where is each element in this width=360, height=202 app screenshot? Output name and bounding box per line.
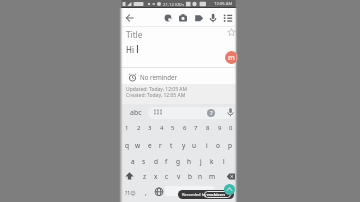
staticText: k [210, 157, 214, 166]
button[interactable]: 6 [179, 121, 190, 135]
staticText: Created: Today, 12:05 AM [126, 92, 186, 99]
staticText: Recorded by [182, 192, 207, 198]
button[interactable]: n [195, 169, 206, 183]
staticText: ?1☺ [125, 189, 136, 196]
button[interactable] [224, 171, 237, 184]
button[interactable]: w [132, 138, 143, 152]
button[interactable]: z [139, 169, 150, 183]
staticText: 0 [229, 124, 233, 132]
staticText: g [176, 157, 180, 166]
staticText: d [154, 157, 158, 166]
button[interactable]: No reminder [121, 70, 236, 84]
button[interactable]: 4 [156, 121, 167, 135]
button[interactable]: l [218, 154, 229, 168]
button[interactable] [154, 187, 164, 197]
button[interactable] [225, 107, 236, 118]
button[interactable] [165, 186, 214, 196]
staticText: r [159, 141, 162, 150]
button[interactable]: p [224, 138, 235, 152]
staticText: Hi [126, 44, 134, 55]
staticText: 21.12 KB/s [163, 1, 185, 7]
button[interactable]: 8 [202, 121, 213, 135]
button[interactable]: j [195, 154, 206, 168]
button[interactable]: b [184, 169, 195, 183]
staticText: 7 [194, 124, 198, 132]
staticText: 3 [148, 124, 152, 132]
staticText: a [131, 157, 135, 166]
button[interactable]: h [184, 154, 195, 168]
staticText: n [198, 172, 203, 181]
staticText: b [188, 172, 192, 181]
button[interactable]: 7 [190, 121, 201, 135]
staticText: f [165, 157, 168, 166]
button[interactable] [123, 170, 136, 183]
staticText: z [143, 172, 147, 181]
staticText: t [170, 141, 173, 150]
staticText: m [209, 172, 216, 181]
staticText: m [228, 53, 235, 63]
button[interactable]: o [212, 138, 223, 152]
staticText: l [223, 157, 225, 166]
button[interactable]: abc [124, 106, 147, 119]
button[interactable]: r [155, 138, 166, 152]
staticText: mobizen [207, 192, 225, 198]
button[interactable]: , [140, 185, 151, 199]
button[interactable] [206, 11, 220, 25]
button[interactable]: m [225, 51, 238, 64]
staticText: No reminder [140, 73, 178, 81]
staticText: abc [130, 108, 142, 118]
staticText: y [182, 141, 186, 150]
button[interactable]: i [201, 138, 212, 152]
staticText: e [148, 141, 152, 150]
staticText: o [216, 141, 220, 150]
button[interactable]: a [127, 154, 138, 168]
button[interactable]: x [150, 169, 161, 183]
button[interactable]: g [172, 154, 183, 168]
button[interactable]: 3 [144, 121, 155, 135]
button[interactable]: c [161, 169, 172, 183]
staticText: Title [126, 29, 143, 40]
button[interactable] [221, 11, 235, 25]
button[interactable]: s [138, 154, 149, 168]
staticText: 2 [137, 124, 141, 132]
button[interactable]: 1 [121, 121, 132, 135]
button[interactable] [176, 11, 190, 25]
staticText: h [187, 157, 192, 166]
button[interactable]: q [121, 138, 132, 152]
staticText: w [135, 141, 141, 150]
staticText: ? [210, 109, 213, 117]
staticText: u [192, 141, 197, 150]
staticText: 4 [160, 124, 164, 132]
button[interactable]: t [166, 138, 177, 152]
staticText: j [200, 157, 202, 166]
staticText: 8 [206, 124, 210, 132]
button[interactable] [192, 11, 206, 25]
button[interactable]: 2 [133, 121, 144, 135]
button[interactable]: k [206, 154, 217, 168]
button[interactable]: 9 [214, 121, 225, 135]
button[interactable]: 0 [225, 121, 236, 135]
button[interactable]: f [161, 154, 172, 168]
staticText: 1 [125, 124, 129, 132]
staticText: s [142, 157, 146, 166]
button[interactable]: ?1☺ [123, 185, 138, 199]
button[interactable]: v [173, 169, 184, 183]
staticText: c [165, 172, 169, 181]
button[interactable]: y [178, 138, 189, 152]
staticText: x [154, 172, 158, 181]
staticText: p [228, 141, 232, 150]
staticText: 6 [183, 124, 187, 132]
button[interactable] [161, 11, 175, 25]
staticText: Updated: Today, 12:05 AM [126, 86, 188, 93]
button[interactable] [121, 8, 140, 27]
staticText: q [125, 141, 129, 150]
button[interactable]: e [144, 138, 155, 152]
staticText: , [145, 188, 147, 197]
staticText: v [177, 172, 181, 181]
button[interactable]: 5 [167, 121, 178, 135]
button[interactable]: u [189, 138, 200, 152]
staticText: 5 [171, 124, 175, 132]
button[interactable]: ? [206, 108, 216, 118]
button[interactable]: m [207, 169, 218, 183]
button[interactable]: d [150, 154, 161, 168]
